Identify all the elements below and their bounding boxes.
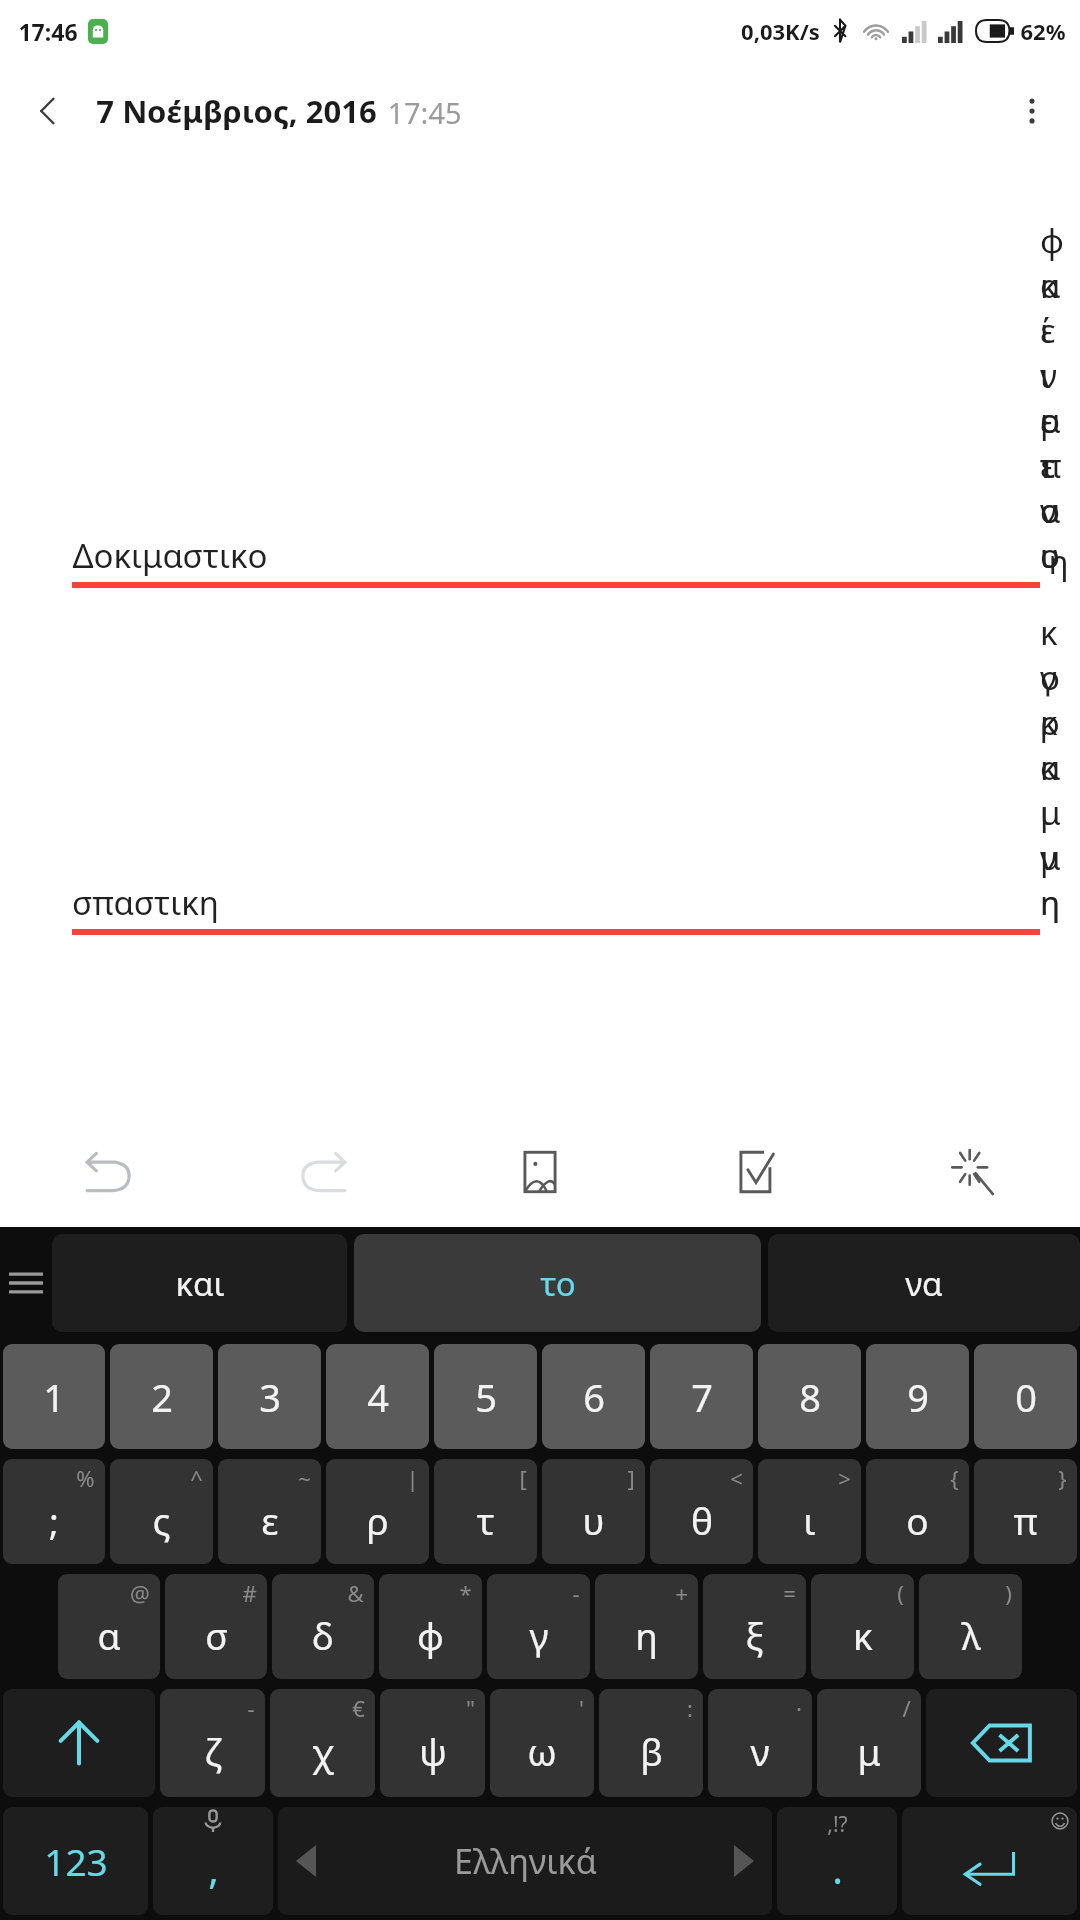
button[interactable]: Back (0, 63, 96, 159)
staticText: η (635, 1610, 658, 1660)
staticText: . (832, 1841, 843, 1895)
staticText: 62% (1020, 16, 1066, 46)
button[interactable]: 4 (326, 1344, 429, 1449)
button[interactable]: να (768, 1234, 1080, 1332)
staticText: ω (527, 1726, 557, 1776)
button[interactable]: * (379, 1574, 482, 1679)
staticText: 3 (259, 1371, 281, 1423)
staticText: & (347, 1578, 364, 1608)
staticText: € (352, 1693, 365, 1723)
button[interactable]: - (487, 1574, 590, 1679)
button[interactable]: Backspace (926, 1689, 1077, 1797)
button[interactable]: @ (58, 1574, 160, 1679)
button[interactable]: [ (434, 1459, 537, 1564)
staticText: · (796, 1693, 802, 1723)
staticText: ^ (190, 1463, 203, 1493)
button[interactable]: · (708, 1689, 812, 1797)
staticText: 123 (44, 1836, 108, 1886)
staticText: Ελληνικά (454, 1838, 597, 1884)
staticText: 7 (691, 1371, 713, 1423)
button[interactable]: ^ (110, 1459, 213, 1564)
button[interactable]: % (3, 1459, 105, 1564)
button[interactable]: & (272, 1574, 374, 1679)
button[interactable]: 9 (866, 1344, 969, 1449)
button[interactable]: ) (919, 1574, 1022, 1679)
staticText: * (459, 1578, 472, 1608)
button[interactable]: Δοκιμαστικο (0, 160, 1080, 1117)
button[interactable]: Insert image (432, 1117, 648, 1227)
staticText: δ (312, 1610, 334, 1660)
button[interactable]: 6 (542, 1344, 645, 1449)
button[interactable]: = (703, 1574, 806, 1679)
staticText: γ (529, 1610, 549, 1660)
staticText: + (675, 1578, 688, 1608)
button[interactable]: # (165, 1574, 267, 1679)
button[interactable]: More options (984, 63, 1080, 159)
staticText: 5 (475, 1371, 497, 1423)
staticText: : (687, 1693, 693, 1723)
button[interactable]: | (326, 1459, 429, 1564)
button[interactable]: + (595, 1574, 698, 1679)
staticText: % (76, 1463, 95, 1493)
button[interactable]: το (354, 1234, 761, 1332)
staticText: να (905, 1261, 943, 1306)
button[interactable]: ] (542, 1459, 645, 1564)
staticText: , (208, 1841, 219, 1895)
staticText: ] (627, 1463, 635, 1493)
staticText: ; (49, 1495, 59, 1545)
button[interactable]: ( (811, 1574, 914, 1679)
button[interactable]: < (650, 1459, 753, 1564)
staticText: το (540, 1261, 576, 1306)
button[interactable]: Effects (864, 1117, 1080, 1227)
button[interactable]: ' (490, 1689, 594, 1797)
staticText: # (242, 1578, 257, 1608)
button[interactable]: { (866, 1459, 969, 1564)
button[interactable]: , (153, 1807, 273, 1915)
staticText: " (466, 1693, 475, 1723)
button[interactable]: ,!? (777, 1807, 897, 1915)
staticText: ξ (745, 1610, 764, 1660)
button[interactable]: Checklist (648, 1117, 864, 1227)
button[interactable]: Menu (0, 1227, 52, 1339)
button[interactable]: / (817, 1689, 921, 1797)
button[interactable]: ~ (218, 1459, 321, 1564)
button[interactable]: € (270, 1689, 375, 1797)
staticText: χ (312, 1726, 334, 1776)
staticText: μ (857, 1726, 881, 1776)
button[interactable]: 1 (3, 1344, 105, 1449)
staticText: ψ (419, 1726, 447, 1776)
staticText: ε (261, 1495, 279, 1545)
staticText: ζ (204, 1726, 222, 1776)
button[interactable]: - (160, 1689, 265, 1797)
button[interactable]: 0 (974, 1344, 1077, 1449)
button[interactable]: Undo (0, 1117, 216, 1227)
button[interactable]: > (758, 1459, 861, 1564)
staticText: 8 (799, 1371, 821, 1423)
staticText: > (838, 1463, 851, 1493)
button[interactable]: Redo (216, 1117, 432, 1227)
staticText: ν (750, 1726, 770, 1776)
staticText: 0,03K/s (741, 16, 820, 46)
button[interactable]: 8 (758, 1344, 861, 1449)
button[interactable]: 3 (218, 1344, 321, 1449)
button[interactable]: 7 (650, 1344, 753, 1449)
staticText: { (950, 1463, 959, 1493)
button[interactable]: : (599, 1689, 703, 1797)
button[interactable]: Enter (902, 1807, 1077, 1915)
button[interactable]: 5 (434, 1344, 537, 1449)
staticText: 17:46 (18, 16, 78, 47)
button[interactable]: } (974, 1459, 1077, 1564)
staticText: 2 (151, 1371, 173, 1423)
button[interactable]: 2 (110, 1344, 213, 1449)
button[interactable]: " (380, 1689, 485, 1797)
staticText: @ (130, 1578, 150, 1608)
staticText: < (730, 1463, 743, 1493)
button[interactable]: Ελληνικά (278, 1807, 772, 1915)
button[interactable]: Shift (3, 1689, 155, 1797)
button[interactable]: 123 (3, 1807, 148, 1915)
button[interactable]: και (52, 1234, 347, 1332)
staticText: σ (205, 1610, 228, 1660)
staticText: ( (897, 1578, 904, 1608)
staticText: α (97, 1610, 121, 1660)
staticText: τ (476, 1495, 495, 1545)
